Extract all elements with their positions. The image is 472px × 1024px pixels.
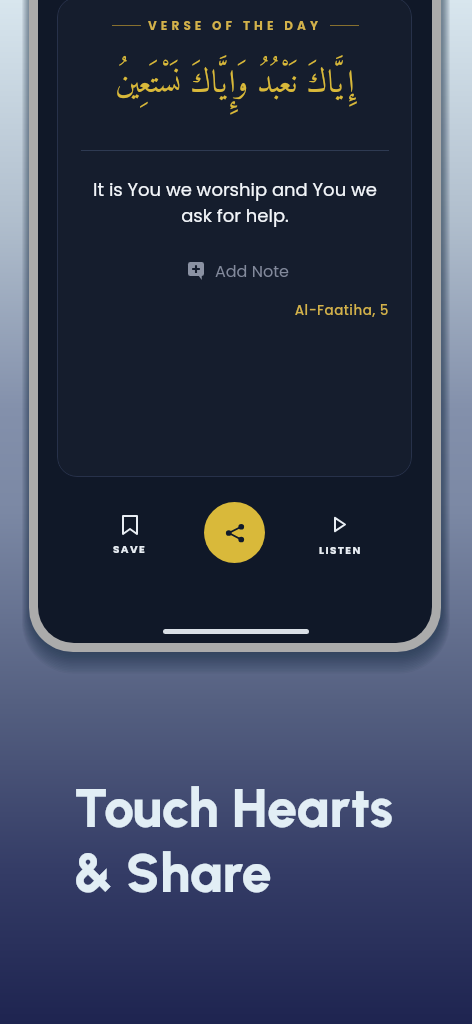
button[interactable]: Share bbox=[204, 502, 265, 563]
button[interactable]: LISTEN bbox=[315, 516, 365, 558]
staticText: LISTEN bbox=[319, 543, 362, 558]
staticText: إِيَّاكَ نَعْبُدُ وَإِيَّاكَ نَسْتَعِينُ bbox=[38, 57, 432, 112]
staticText: Touch Hearts bbox=[74, 776, 394, 841]
button[interactable]: SAVE bbox=[112, 515, 148, 557]
staticText: & Share bbox=[74, 841, 272, 906]
staticText: SAVE bbox=[113, 542, 147, 557]
staticText: VERSE OF THE DAY bbox=[148, 17, 323, 34]
staticText: It is You we worship and You we ask for … bbox=[86, 177, 384, 228]
staticText: Add Note bbox=[215, 260, 289, 282]
button[interactable]: Add Note bbox=[41, 257, 432, 285]
staticText: Al-Faatiha, 5 bbox=[38, 301, 389, 320]
